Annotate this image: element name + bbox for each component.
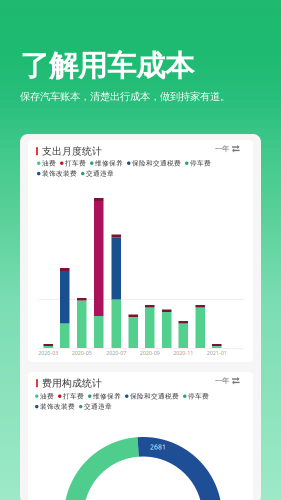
staticText: 保险和交通税费 <box>132 159 181 167</box>
staticText: 维修保养 <box>93 392 121 400</box>
staticText: 费用构成统计 <box>42 377 102 389</box>
staticText: 维修保养 <box>95 159 123 167</box>
staticText: 2681 <box>150 443 166 451</box>
staticText: 2021-01 <box>207 349 227 357</box>
staticText: 2020-05 <box>72 349 92 357</box>
staticText: 装饰改装费 <box>40 402 75 411</box>
staticText: 交通违章 <box>86 169 114 178</box>
button[interactable]: 一年 <box>213 374 242 387</box>
staticText: 2020-03 <box>38 349 58 357</box>
staticText: 交通违章 <box>84 402 112 411</box>
staticText: 打车费 <box>65 159 86 167</box>
staticText: 停车费 <box>188 392 209 400</box>
staticText: 2020-09 <box>140 349 160 357</box>
staticText: 了解用车成本 <box>20 48 194 84</box>
staticText: 打车费 <box>63 392 84 400</box>
staticText: 油费 <box>40 392 54 400</box>
staticText: 油费 <box>42 159 56 167</box>
staticText: 支出月度统计 <box>42 145 102 157</box>
staticText: 一年 <box>215 144 229 153</box>
button[interactable]: 一年 <box>213 142 242 155</box>
staticText: 停车费 <box>190 159 211 167</box>
staticText: 保存汽车账本，清楚出行成本，做到持家有道。 <box>20 90 230 103</box>
staticText: 保险和交通税费 <box>130 392 179 400</box>
staticText: 装饰改装费 <box>42 169 77 178</box>
staticText: 2020-11 <box>173 349 193 357</box>
staticText: 一年 <box>215 376 229 385</box>
staticText: 2020-07 <box>106 349 126 357</box>
